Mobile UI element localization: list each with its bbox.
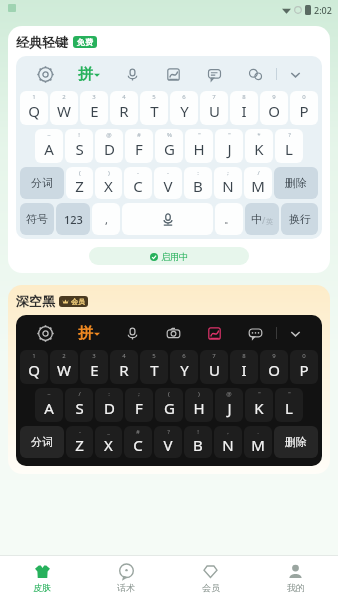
button[interactable]: # [125, 129, 153, 163]
button[interactable]: ( [155, 388, 183, 422]
button[interactable]: 6 [170, 91, 198, 125]
button[interactable]: Camera [153, 319, 194, 347]
button[interactable]: 拼 [78, 324, 100, 343]
button[interactable]: 6 [170, 350, 198, 384]
button[interactable]: 7 [200, 91, 228, 125]
staticText: : [108, 390, 110, 398]
button[interactable]: 经典轻键 [8, 26, 330, 273]
button[interactable]: ) [95, 167, 122, 199]
button[interactable]: Collapse keyboard [277, 60, 314, 88]
button[interactable]: ) [185, 388, 213, 422]
button[interactable]: 符号 [20, 203, 54, 235]
button[interactable]: Phrases [194, 60, 235, 88]
button[interactable]: @ [215, 388, 243, 422]
button[interactable]: % [155, 129, 183, 163]
button[interactable]: 2 [50, 350, 78, 384]
button[interactable]: ! [184, 426, 212, 458]
button[interactable]: Collapse keyboard [277, 319, 314, 347]
button[interactable]: 0 [290, 91, 318, 125]
button[interactable]: 4 [110, 350, 138, 384]
button[interactable]: " [245, 388, 273, 422]
button[interactable]: Sticker [194, 319, 235, 347]
button[interactable]: More [235, 319, 276, 347]
button[interactable]: 1 [20, 91, 48, 125]
button[interactable]: Voice input space [122, 203, 213, 235]
staticText: Y [180, 360, 189, 380]
button[interactable]: ? [154, 426, 182, 458]
button[interactable]: 皮肤 [0, 556, 84, 600]
button[interactable]: 启用中 [89, 247, 249, 265]
button[interactable]: 2 [50, 91, 78, 125]
staticText: C [133, 176, 143, 196]
button[interactable]: * [245, 129, 273, 163]
button[interactable]: 删除 [274, 426, 318, 458]
button[interactable]: , [214, 426, 242, 458]
button[interactable]: 8 [230, 350, 258, 384]
button[interactable]: ; [125, 388, 153, 422]
button[interactable]: 我的 [253, 556, 338, 600]
button[interactable]: ~ [35, 129, 63, 163]
staticText: 拼 [78, 324, 93, 343]
button[interactable]: Settings [24, 319, 66, 347]
button[interactable]: 5 [140, 91, 168, 125]
button[interactable]: : [184, 167, 212, 199]
button[interactable]: # [124, 426, 152, 458]
button[interactable]: 3 [80, 350, 108, 384]
button[interactable]: / [244, 167, 272, 199]
button[interactable]: Voice input [112, 60, 153, 88]
button[interactable]: ( [66, 167, 93, 199]
button[interactable]: 。 [215, 203, 243, 235]
button[interactable]: 5 [140, 350, 168, 384]
button[interactable]: ; [214, 167, 242, 199]
button[interactable]: 4 [110, 91, 138, 125]
button[interactable]: 删除 [274, 167, 318, 199]
button[interactable]: , [92, 203, 120, 235]
button[interactable]: 分词 [20, 426, 64, 458]
staticText: 2 [62, 93, 66, 101]
staticText: _ [107, 428, 110, 436]
button[interactable]: 0 [290, 350, 318, 384]
button[interactable]: . [244, 426, 272, 458]
button[interactable]: 8 [230, 91, 258, 125]
button[interactable]: 123 [56, 203, 90, 235]
button[interactable]: " [185, 129, 213, 163]
staticText: Z [75, 435, 84, 455]
button[interactable]: - [154, 167, 182, 199]
staticText: C [133, 435, 143, 455]
button[interactable]: 拼 [78, 65, 100, 84]
button[interactable]: 3 [80, 91, 108, 125]
button[interactable]: 换行 [281, 203, 318, 235]
staticText: 9 [272, 93, 276, 101]
button[interactable]: Handwriting [153, 60, 194, 88]
staticText: N [222, 176, 234, 196]
button[interactable]: - [124, 167, 152, 199]
button[interactable]: ! [65, 129, 93, 163]
button[interactable]: " [215, 129, 243, 163]
button[interactable]: WeChat [235, 60, 276, 88]
staticText: P [299, 360, 309, 380]
button[interactable]: 话术 [84, 556, 168, 600]
button[interactable]: @ [95, 129, 123, 163]
staticText: 会员 [71, 297, 85, 306]
button[interactable]: : [95, 388, 123, 422]
staticText: " [198, 131, 201, 139]
button[interactable]: ~ [35, 388, 63, 422]
button[interactable]: / [65, 388, 93, 422]
staticText: M [251, 435, 265, 455]
button[interactable]: 会员 [168, 556, 253, 600]
button[interactable]: 7 [200, 350, 228, 384]
button[interactable]: Voice input [112, 319, 153, 347]
button[interactable]: - [66, 426, 93, 458]
button[interactable]: _ [95, 426, 122, 458]
button[interactable]: 9 [260, 91, 288, 125]
button[interactable]: 1 [20, 350, 48, 384]
button[interactable]: Settings [24, 60, 66, 88]
staticText: 3 [92, 352, 96, 360]
staticText: M [251, 176, 265, 196]
button[interactable]: 分词 [20, 167, 64, 199]
button[interactable]: 深空黑 [8, 285, 330, 474]
button[interactable]: " [275, 388, 303, 422]
button[interactable]: 9 [260, 350, 288, 384]
button[interactable]: 中 [245, 203, 279, 235]
button[interactable]: ? [275, 129, 303, 163]
